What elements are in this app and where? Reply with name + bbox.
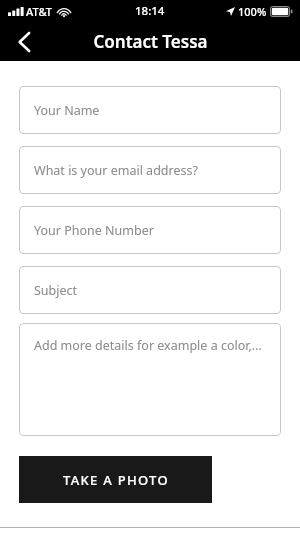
staticText: AT&T [26, 4, 53, 19]
button[interactable]: TAKE A PHOTO [19, 456, 212, 503]
button[interactable]: What is your email address? [19, 146, 281, 194]
staticText: Your Phone Number [34, 222, 154, 239]
button[interactable]: Subject [19, 266, 281, 314]
staticText: Contact Tessa [93, 30, 208, 53]
staticText: 100% [238, 4, 267, 19]
button[interactable]: Back [2, 22, 46, 61]
button[interactable]: Your Phone Number [19, 206, 281, 254]
staticText: TAKE A PHOTO [63, 471, 169, 489]
button[interactable]: Your Name [19, 86, 281, 134]
staticText: Your Name [34, 102, 100, 119]
staticText: Add more details for example a color,… [34, 337, 262, 354]
staticText: What is your email address? [34, 162, 198, 179]
button[interactable]: Add more details for example a color,… [19, 323, 281, 436]
staticText: 18:14 [135, 3, 165, 19]
staticText: Subject [34, 282, 78, 299]
